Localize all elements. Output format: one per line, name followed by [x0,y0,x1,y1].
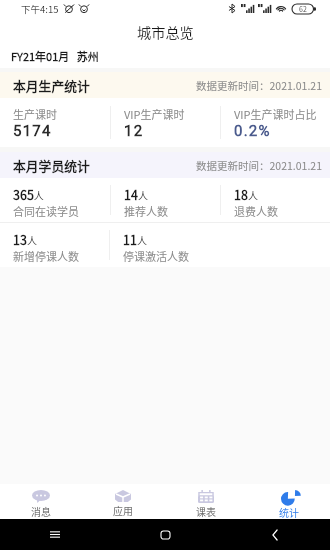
staticText: 数据更新时间：2021.01.21 [196,78,322,93]
button[interactable]: 消息 [0,484,82,519]
staticText: 退费人数 [234,203,278,219]
staticText: 5174 [13,122,52,140]
staticText: 62 [299,4,307,14]
staticText: 下午4:15 [21,2,59,16]
staticText: 停课激活人数 [123,248,189,264]
staticText: 推荐人数 [124,203,168,219]
staticText: 课表 [196,504,216,518]
staticText: 数据更新时间：2021.01.21 [196,158,322,173]
button[interactable]: 应用 [82,484,164,519]
staticText: 生产课时 [13,106,57,122]
staticText: 13人 [13,230,37,248]
staticText: 0.2% [234,122,271,140]
button[interactable]: 课表 [164,484,247,519]
staticText: 14人 [124,185,148,203]
staticText: 本月学员统计 [13,156,90,175]
staticText: VIP生产课时 [124,106,185,122]
staticText: 18人 [234,185,258,203]
button[interactable]: Back [220,519,330,550]
staticText: 应用 [113,503,133,517]
staticText: FY21年01月 苏州 [11,48,99,64]
staticText: 统计 [279,505,299,519]
button[interactable]: Home [110,519,220,550]
button[interactable]: FY21年01月 苏州 [0,43,330,68]
staticText: 城市总览 [137,22,194,43]
staticText: VIP生产课时占比 [234,106,317,122]
staticText: 365人 [13,185,44,203]
staticText: 消息 [31,504,51,518]
staticText: 11人 [123,230,147,248]
button[interactable]: Recent apps [0,519,110,550]
staticText: 本月生产统计 [13,76,90,95]
staticText: 新增停课人数 [13,248,79,264]
staticText: 合同在读学员 [13,203,79,219]
staticText: 12 [124,122,144,140]
button[interactable]: 统计 [247,484,330,519]
